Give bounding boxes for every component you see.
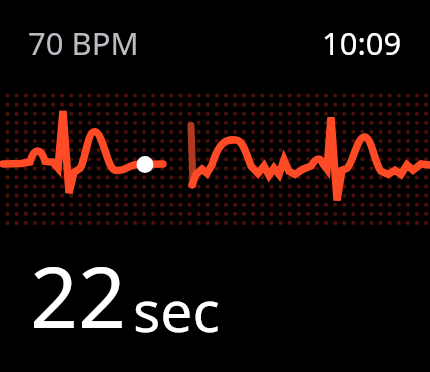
button[interactable]: ECG waveform — [3, 91, 427, 228]
button[interactable]: Heart rate 70 BPM — [28, 22, 139, 64]
staticText: sec — [133, 271, 220, 349]
staticText: 70 BPM — [28, 22, 139, 64]
staticText: 10:09 — [322, 22, 402, 64]
staticText: 22 — [30, 238, 127, 352]
button[interactable]: 22 — [30, 238, 220, 352]
